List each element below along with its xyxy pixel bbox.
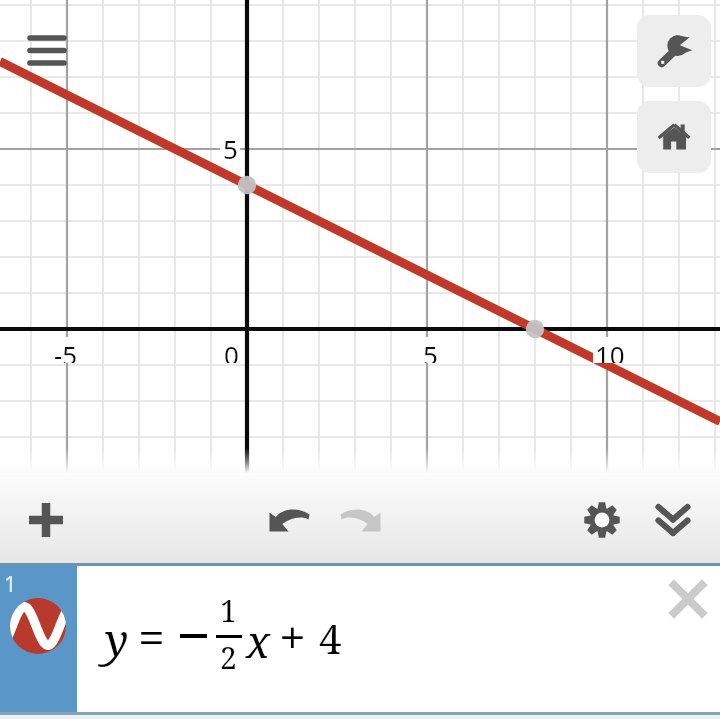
staticText: 5 xyxy=(423,337,438,363)
staticText: + xyxy=(279,604,306,669)
button[interactable]: Graph settings xyxy=(637,15,711,87)
staticText: 10 xyxy=(595,337,625,363)
button[interactable]: Settings xyxy=(575,493,629,547)
button[interactable]: 1 xyxy=(0,566,720,712)
staticText: 1 xyxy=(4,568,17,598)
staticText: 0 xyxy=(224,337,239,363)
button[interactable]: Menu xyxy=(22,24,72,74)
staticText: y xyxy=(105,609,129,669)
button[interactable]: Delete expression xyxy=(660,571,716,627)
staticText: = xyxy=(138,604,165,669)
staticText: 1 xyxy=(220,590,237,631)
staticText: x xyxy=(246,611,271,671)
button[interactable]: Add expression xyxy=(19,493,73,547)
button[interactable]: Home xyxy=(637,101,711,173)
staticText: 5 xyxy=(223,131,238,161)
button[interactable]: Redo xyxy=(334,493,388,547)
button[interactable]: Undo xyxy=(262,493,316,547)
button[interactable]: Collapse panel xyxy=(646,493,700,547)
staticText: -5 xyxy=(54,337,78,363)
staticText: 2 xyxy=(220,637,237,678)
staticText: 4 xyxy=(319,611,342,665)
